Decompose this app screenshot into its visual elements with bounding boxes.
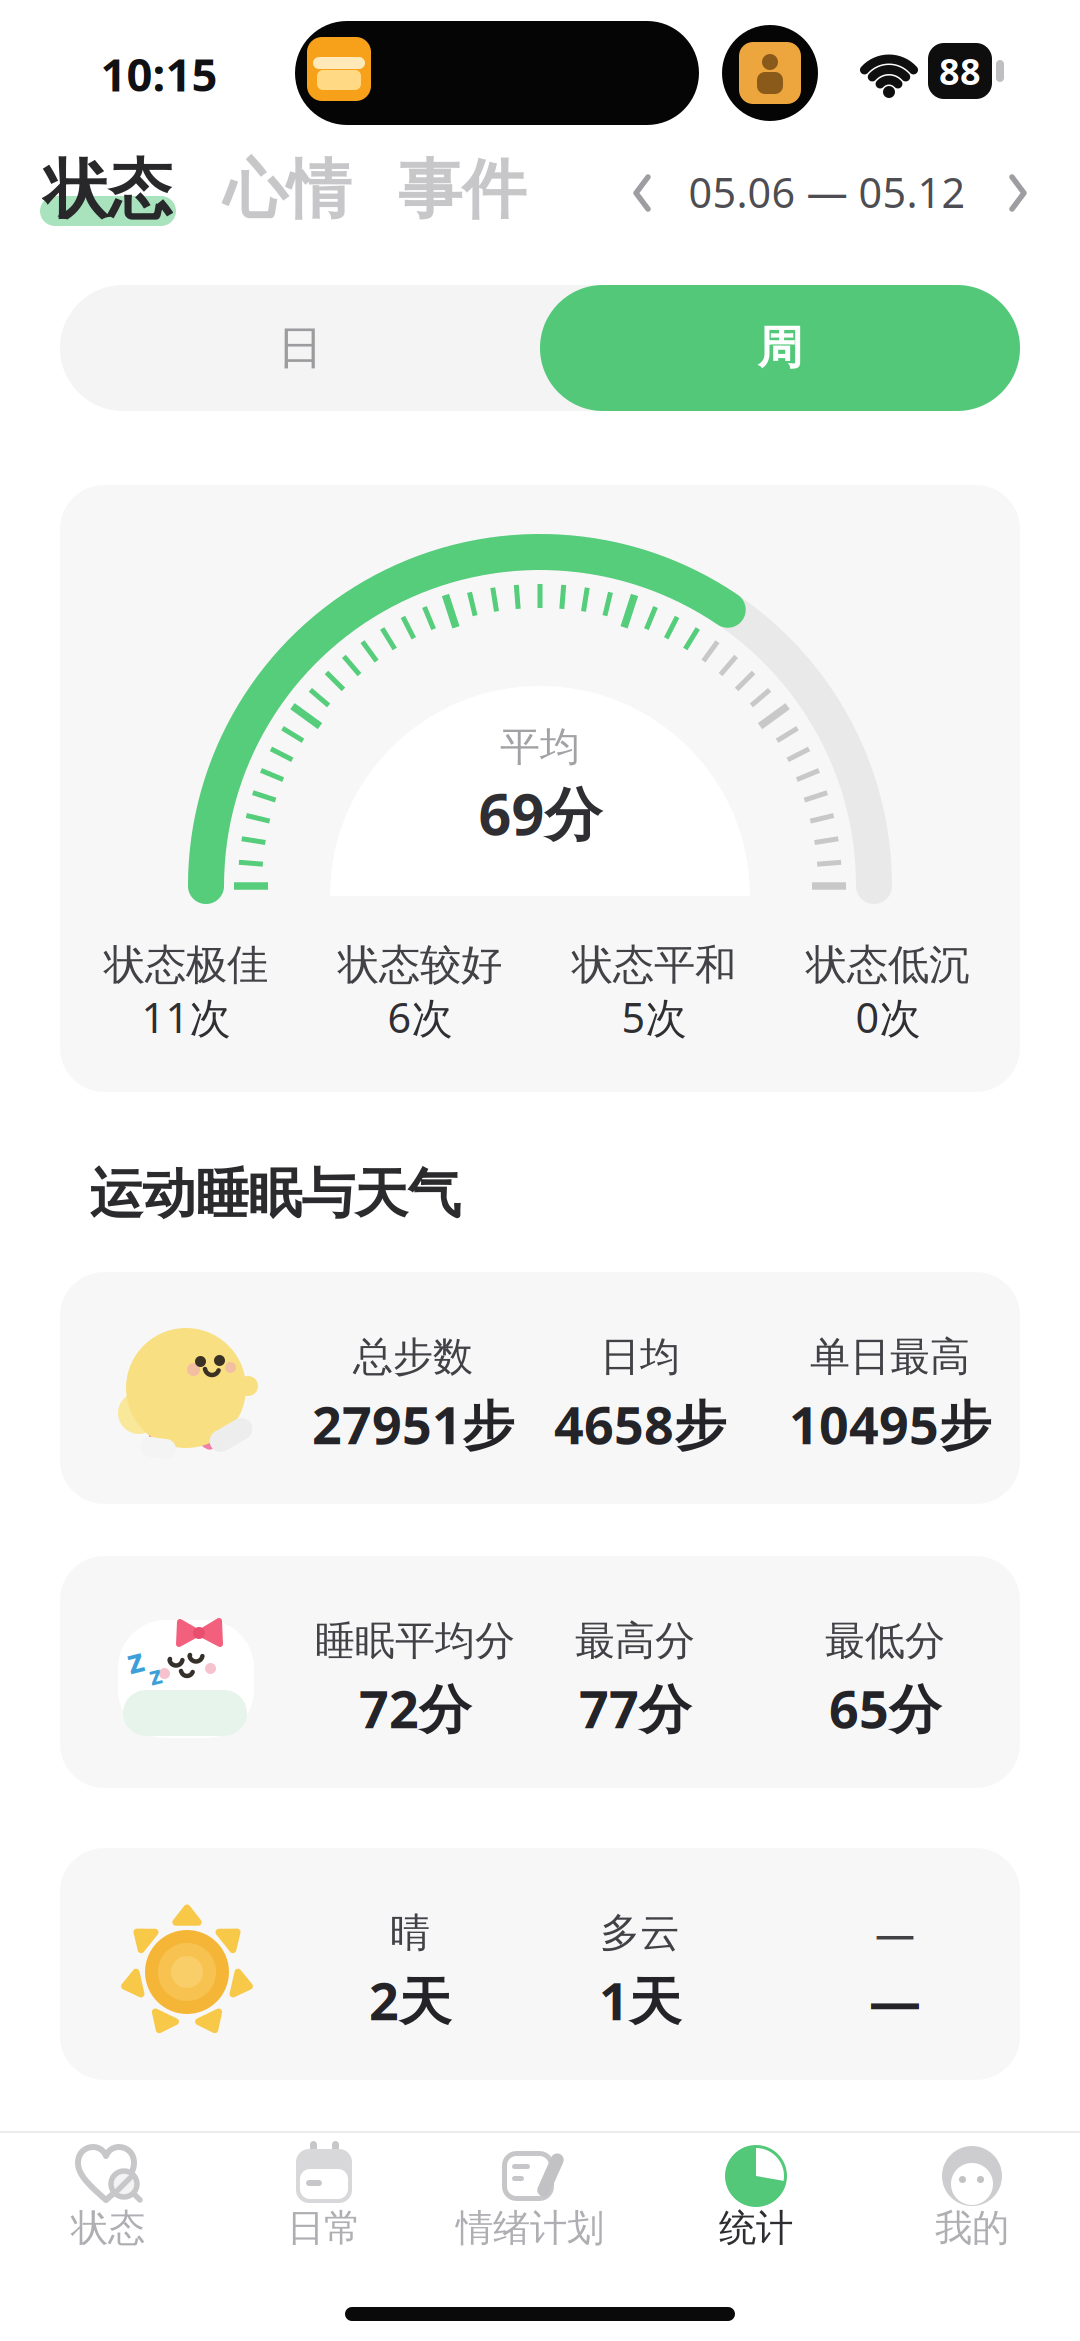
staticText: 总步数 [353,1332,473,1381]
staticText: 周 [757,320,802,376]
button[interactable]: 心情 [221,154,353,226]
staticText: 5次 [621,990,686,1044]
staticText: 65分 [829,1673,941,1743]
button[interactable]: 情绪计划 [460,2138,620,2254]
staticText: 睡眠平均分 [315,1616,515,1665]
staticText: 单日最高 [810,1332,970,1381]
staticText: 晴 [390,1908,430,1957]
staticText: 状态极佳 [104,940,268,990]
staticText: 11次 [141,990,230,1044]
staticText: 心情 [223,151,351,229]
button[interactable]: 状态 [40,154,176,226]
staticText: 日均 [600,1332,680,1381]
button[interactable]: 状态 [28,2138,188,2254]
staticText: 88 [939,47,981,95]
button[interactable]: 统计 [676,2138,836,2254]
staticText: 运动睡眠与天气 [89,1161,460,1227]
staticText: 多云 [600,1908,680,1957]
staticText: 72分 [359,1673,471,1743]
staticText: 状态平和 [572,940,736,990]
staticText: 4658步 [554,1389,726,1459]
button[interactable]: 事件 [396,154,528,226]
staticText: 1天 [599,1965,681,2035]
button[interactable]: 日常 [244,2138,404,2254]
button[interactable]: 日 [60,285,540,411]
button[interactable]: Previous week [634,175,652,211]
staticText: 最低分 [825,1616,945,1665]
staticText: 69分 [478,775,601,851]
button[interactable]: 周 [540,285,1020,411]
staticText: 最高分 [575,1616,695,1665]
staticText: 10:15 [100,44,217,104]
staticText: 状态低沉 [806,940,970,990]
staticText: z [149,1658,161,1692]
staticText: 0次 [855,990,920,1044]
staticText: 状态较好 [338,940,502,990]
staticText: 情绪计划 [456,2205,604,2251]
staticText: 状态 [44,151,172,229]
staticText: 我的 [935,2205,1009,2251]
staticText: 2天 [369,1965,451,2035]
staticText: 事件 [398,151,526,229]
staticText: 27951步 [312,1389,514,1459]
staticText: 日常 [287,2205,361,2251]
staticText: — [875,1906,915,1959]
staticText: — [869,1965,921,2035]
staticText: 平均 [500,722,580,771]
staticText: 状态 [71,2205,145,2251]
button[interactable]: Next week [1008,175,1026,211]
staticText: 10495步 [789,1389,991,1459]
staticText: 统计 [719,2205,793,2251]
button[interactable]: 我的 [892,2138,1052,2254]
staticText: 6次 [387,990,452,1044]
staticText: 77分 [579,1673,691,1743]
staticText: z [127,1638,143,1682]
staticText: 日 [277,320,322,376]
staticText: 05.06 — 05.12 [688,165,965,219]
